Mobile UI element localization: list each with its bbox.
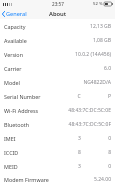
button[interactable]: Version [0, 47, 115, 61]
staticText: 10.0.2 (14A456) [75, 51, 111, 58]
staticText: 8 8 [77, 149, 111, 156]
staticText: 48:43:7C:DC:5C:0E [68, 107, 111, 114]
staticText: Carrier [4, 65, 22, 72]
button[interactable]: Bluetooth [0, 117, 115, 131]
staticText: Serial Number [4, 93, 41, 100]
staticText: Bluetooth [4, 121, 30, 128]
staticText: Modem Firmware [4, 176, 49, 183]
staticText: C P [77, 93, 111, 100]
button[interactable]: Model [0, 75, 115, 89]
button[interactable]: Available [0, 33, 115, 47]
staticText: ICCID [4, 149, 19, 156]
staticText: 23:57 [52, 1, 64, 7]
button[interactable]: MEID [0, 159, 115, 173]
staticText: 3 0 [77, 135, 111, 142]
staticText: General [6, 10, 27, 18]
staticText: Wi-Fi Address [4, 107, 39, 114]
button[interactable]: Capacity [0, 19, 115, 33]
staticText: MEID [4, 163, 18, 170]
staticText: NG4822D/A [83, 79, 111, 86]
staticText: 1,08 GB [92, 37, 111, 44]
button[interactable]: ICCID [0, 145, 115, 159]
button[interactable]: General [0, 9, 31, 19]
staticText: 52 % [93, 1, 103, 7]
button[interactable]: Wi-Fi Address [0, 103, 115, 117]
staticText: About [49, 10, 67, 18]
staticText: IMEI [4, 135, 16, 142]
staticText: 3 0 [77, 163, 111, 170]
staticText: 5.24.00 [94, 176, 111, 183]
staticText: 48:43:7C:DC:5C:0F [68, 121, 111, 128]
staticText: Version [4, 51, 23, 58]
staticText: Model [4, 79, 20, 86]
staticText: Capacity [4, 23, 26, 30]
staticText: 6.0 [103, 65, 111, 72]
button[interactable]: IMEI [0, 131, 115, 145]
button[interactable]: Carrier [0, 61, 115, 75]
button[interactable]: Serial Number [0, 89, 115, 103]
staticText: 12,13 GB [90, 23, 111, 30]
button[interactable]: Modem Firmware [0, 173, 115, 185]
staticText: Available [4, 37, 27, 44]
